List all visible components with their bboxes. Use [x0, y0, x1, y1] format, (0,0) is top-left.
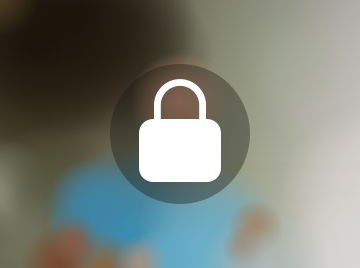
- button[interactable]: Locked: [110, 64, 250, 204]
